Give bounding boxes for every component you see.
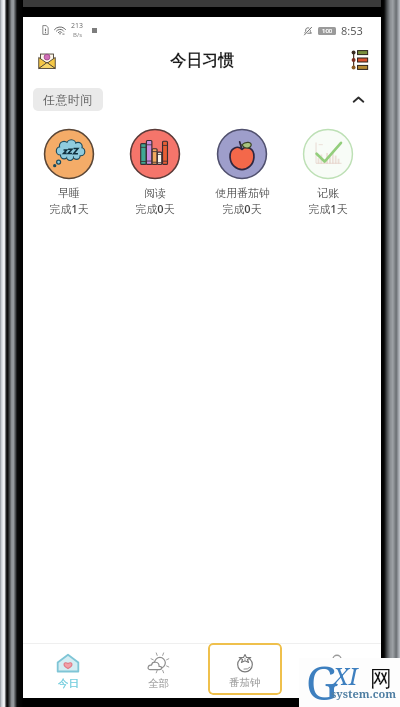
button[interactable]: 早睡 xyxy=(29,128,109,216)
staticText: 完成0天 xyxy=(135,201,175,216)
staticText: 网 xyxy=(370,665,392,693)
staticText: 任意时间 xyxy=(43,92,93,107)
button[interactable]: 我的 xyxy=(292,643,381,698)
staticText: 阅读 xyxy=(144,186,166,200)
staticText: 完成1天 xyxy=(49,201,89,216)
staticText: 完成1天 xyxy=(308,201,348,216)
staticText: XI xyxy=(333,659,358,692)
button[interactable]: 全部 xyxy=(113,643,202,698)
staticText: 8:53 xyxy=(341,23,363,38)
staticText: 今日习惯 xyxy=(170,51,234,71)
staticText: 100 xyxy=(322,27,333,35)
button[interactable]: Messages xyxy=(32,45,62,75)
staticText: 记账 xyxy=(317,186,339,200)
staticText: G xyxy=(306,652,339,707)
staticText: 我的 xyxy=(327,677,348,690)
staticText: 早睡 xyxy=(58,186,80,200)
button[interactable]: 任意时间 xyxy=(33,88,103,111)
button[interactable]: 番茄钟 xyxy=(208,643,282,695)
staticText: 213 xyxy=(71,21,84,31)
staticText: 使用番茄钟 xyxy=(215,186,270,200)
button[interactable]: 阅读 xyxy=(115,128,195,216)
button[interactable]: 使用番茄钟 xyxy=(202,128,282,216)
staticText: 今日 xyxy=(58,677,79,690)
button[interactable]: Collapse xyxy=(346,87,370,111)
staticText: 全部 xyxy=(148,677,169,690)
staticText: 完成0天 xyxy=(222,201,262,216)
button[interactable]: Sort xyxy=(344,45,374,75)
staticText: system.com xyxy=(331,686,397,701)
button[interactable]: 记账 xyxy=(288,128,368,216)
button[interactable]: 今日 xyxy=(23,643,112,698)
staticText: 番茄钟 xyxy=(229,676,261,689)
staticText: B/s xyxy=(73,31,83,39)
